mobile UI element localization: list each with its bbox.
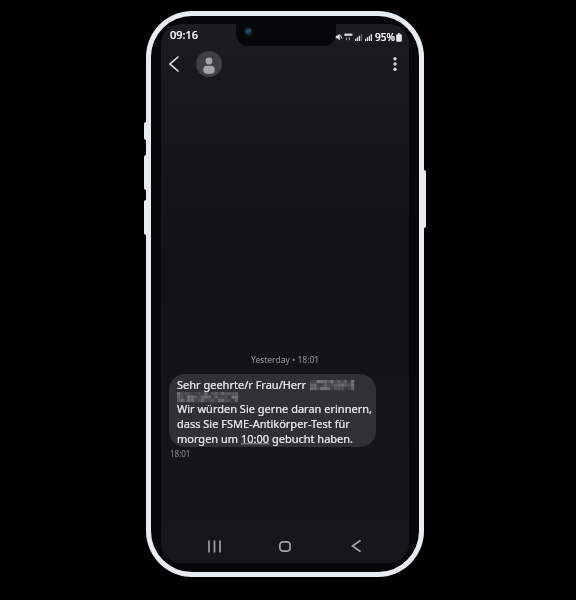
button[interactable] (163, 52, 185, 76)
button[interactable]: Sehr geehrte/r Frau/Herr (169, 374, 376, 447)
staticText: 18:01 (170, 448, 191, 459)
staticText: 09:16 (170, 27, 199, 42)
button[interactable] (385, 51, 405, 77)
button[interactable] (271, 532, 299, 560)
button[interactable] (200, 532, 228, 560)
staticText: dass Sie FSME-Antikörper-Test für (177, 416, 350, 431)
staticText: morgen um 10:00 gebucht haben. (177, 431, 354, 446)
staticText: Yesterday • 18:01 (251, 354, 320, 366)
button[interactable] (196, 51, 222, 77)
button[interactable] (342, 532, 370, 560)
staticText: Wir würden Sie gerne daran erinnern, (177, 401, 372, 416)
staticText: 95% (375, 30, 395, 44)
staticText: Sehr geehrte/r Frau/Herr (177, 377, 310, 392)
